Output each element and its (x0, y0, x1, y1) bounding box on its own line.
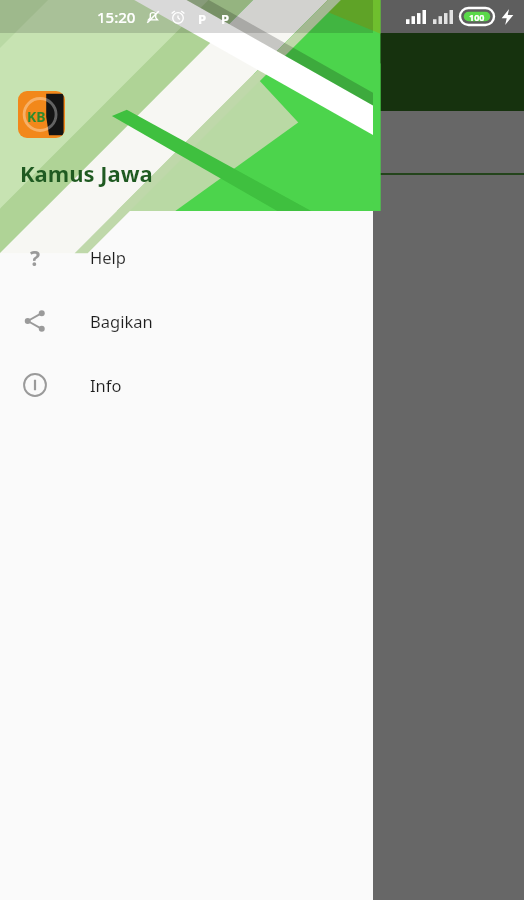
staticText: Info (90, 374, 122, 396)
staticText: Kamus Jawa (20, 158, 153, 188)
staticText: Bagikan (90, 310, 153, 332)
staticText: P (221, 10, 230, 24)
staticText: 15:20 (97, 7, 136, 27)
button[interactable]: Info (0, 353, 373, 417)
staticText: KB (27, 107, 46, 126)
staticText: P (198, 10, 207, 24)
staticText: Help (90, 246, 126, 268)
button[interactable]: ? (0, 225, 373, 289)
staticText: ? (30, 244, 41, 270)
button[interactable]: Bagikan (0, 289, 373, 353)
staticText: 100 (469, 11, 485, 23)
